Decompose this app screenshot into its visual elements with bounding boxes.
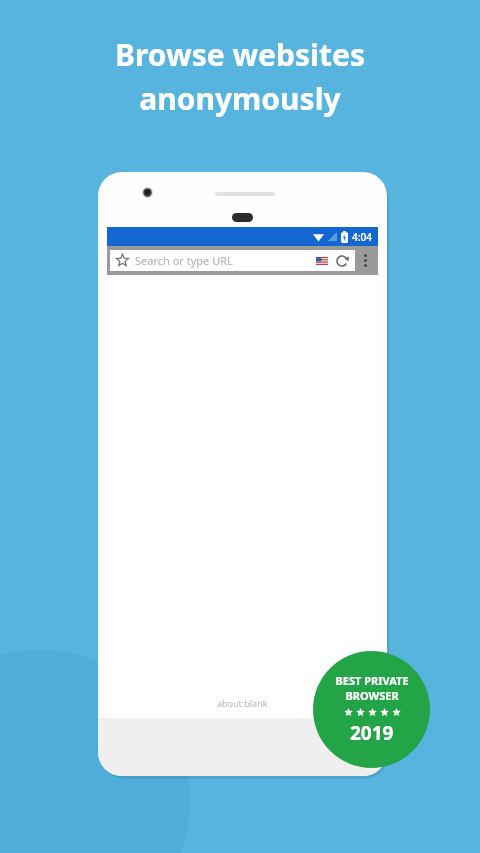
staticText: Search or type URL xyxy=(135,253,316,268)
button[interactable]: Search or type URL xyxy=(110,250,355,271)
staticText: 4:04 xyxy=(352,230,372,244)
staticText: anonymously xyxy=(139,78,341,119)
staticText: about:blank xyxy=(217,697,268,709)
staticText: BROWSER xyxy=(345,688,399,703)
staticText: 2019 xyxy=(350,720,394,746)
staticText: Browse websites xyxy=(115,34,365,75)
button[interactable]: More options xyxy=(355,246,375,275)
button[interactable]: Reload xyxy=(335,254,349,268)
button[interactable]: BEST PRIVATE xyxy=(313,651,430,768)
staticText: BEST PRIVATE xyxy=(335,673,409,688)
